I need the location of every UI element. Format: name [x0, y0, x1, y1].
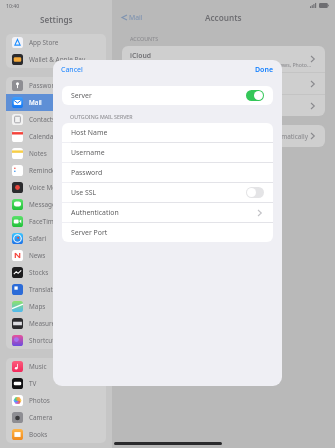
staticText: 10:40 — [6, 2, 20, 9]
staticText: Password — [71, 168, 103, 177]
button[interactable]: App Store — [6, 34, 106, 51]
button[interactable]: Measure — [6, 315, 106, 332]
staticText: Safari — [29, 234, 47, 243]
staticText: Cancel — [61, 65, 83, 75]
button[interactable]: TV — [6, 375, 106, 392]
staticText: Authentication — [71, 208, 119, 217]
staticText: Contacts — [29, 115, 56, 124]
button[interactable]: iCloud — [122, 46, 325, 72]
staticText: Reminders — [29, 166, 62, 175]
staticText: Messages — [29, 200, 59, 209]
button[interactable]: Server Port — [62, 223, 273, 242]
button[interactable]: Cancel — [53, 62, 91, 78]
staticText: Translate — [29, 285, 57, 294]
button[interactable]: Done — [247, 62, 282, 78]
button[interactable]: Voice Memos — [6, 179, 106, 196]
staticText: Photos — [29, 396, 50, 405]
button[interactable]: Server — [62, 86, 273, 105]
staticText: News — [29, 251, 46, 260]
button[interactable]: Automatically — [122, 125, 325, 147]
staticText: App Store — [29, 38, 59, 47]
button[interactable]: Mail — [120, 11, 145, 24]
button[interactable]: Username — [62, 143, 273, 162]
button[interactable]: Books — [6, 426, 106, 443]
button[interactable] — [122, 73, 325, 94]
staticText: Use SSL — [71, 188, 97, 197]
staticText: Mail — [129, 13, 143, 22]
button[interactable]: Shortcuts — [6, 332, 106, 349]
staticText: Mail — [29, 98, 42, 107]
staticText: Voice Memos — [29, 183, 69, 192]
button[interactable]: Messages — [6, 196, 106, 213]
staticText: Passwords — [29, 81, 61, 90]
staticText: Server — [71, 91, 92, 100]
button[interactable]: Maps — [6, 298, 106, 315]
staticText: Server Port — [71, 228, 108, 237]
staticText: TV — [29, 379, 37, 388]
staticText: Username — [71, 148, 105, 157]
staticText: Music — [29, 362, 47, 371]
button[interactable]: Camera — [6, 409, 106, 426]
staticText: FaceTime — [29, 217, 58, 226]
button[interactable]: Photos — [6, 392, 106, 409]
button[interactable]: Password — [62, 163, 273, 182]
staticText: Done — [255, 65, 274, 75]
staticText: ACCOUNTS — [130, 35, 159, 42]
button[interactable]: Music — [6, 358, 106, 375]
button[interactable]: Authentication — [62, 203, 273, 222]
button[interactable]: Reminders — [6, 162, 106, 179]
button[interactable] — [122, 95, 325, 116]
button[interactable]: Notes — [6, 145, 106, 162]
staticText: OUTGOING MAIL SERVER — [70, 113, 133, 120]
staticText: Automatically — [267, 132, 308, 141]
button[interactable]: Wallet & Apple Pay — [6, 51, 106, 68]
staticText: Camera — [29, 413, 53, 422]
button[interactable]: Calendar — [6, 128, 106, 145]
button[interactable]: Use SSL — [62, 183, 273, 202]
staticText: Calendar — [29, 132, 56, 141]
staticText: Host Name — [71, 128, 108, 137]
button[interactable]: Mail — [6, 94, 106, 111]
button[interactable]: Stocks — [6, 264, 106, 281]
staticText: Shortcuts — [29, 336, 58, 345]
staticText: Stocks — [29, 268, 49, 277]
staticText: Accounts — [205, 12, 242, 23]
button[interactable]: Host Name — [62, 123, 273, 142]
staticText: Notes — [29, 149, 47, 158]
staticText: Maps — [29, 302, 46, 311]
staticText: Books — [29, 430, 48, 439]
button[interactable]: On — [246, 90, 264, 101]
staticText: Wallet & Apple Pay — [29, 55, 86, 64]
button[interactable]: Contacts — [6, 111, 106, 128]
button[interactable]: Passwords — [6, 77, 106, 94]
staticText: iCloud — [130, 51, 151, 60]
button[interactable]: Translate — [6, 281, 106, 298]
staticText: Settings — [40, 14, 73, 25]
staticText: iCloud Drive, Contacts, Calendars, Safar… — [130, 61, 311, 68]
button[interactable]: Safari — [6, 230, 106, 247]
button[interactable]: FaceTime — [6, 213, 106, 230]
button[interactable]: Off — [246, 187, 264, 198]
staticText: Measure — [29, 319, 56, 328]
button[interactable]: News — [6, 247, 106, 264]
